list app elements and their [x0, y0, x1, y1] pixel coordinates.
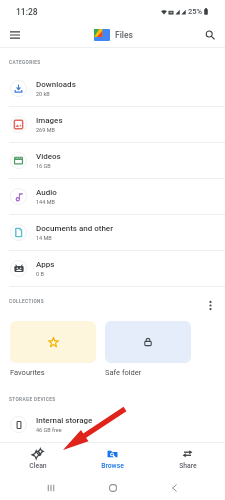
button[interactable]: Audio — [0, 179, 225, 214]
staticText: 46 GB free — [36, 427, 62, 433]
staticText: 0 B — [36, 271, 44, 277]
staticText: 25% — [188, 7, 203, 16]
staticText: Internal storage — [36, 416, 93, 425]
staticText: Clean — [29, 462, 47, 470]
staticText: Documents and other — [36, 224, 113, 233]
button[interactable]: Browse — [75, 448, 150, 470]
staticText: Files — [115, 30, 133, 40]
staticText: Share — [179, 462, 197, 470]
button[interactable]: Back — [163, 477, 185, 499]
staticText: 269 MB — [36, 127, 55, 133]
button[interactable]: Home — [102, 477, 124, 499]
button[interactable]: Internal storage — [0, 410, 225, 438]
staticText: COLLECTIONS — [9, 299, 44, 305]
staticText: 11:28 — [16, 7, 38, 17]
button[interactable]: Favourites — [10, 321, 96, 377]
staticText: Browse — [101, 462, 124, 470]
staticText: Videos — [36, 152, 61, 161]
button[interactable]: More options — [202, 297, 218, 313]
button[interactable]: Share — [150, 448, 225, 470]
button[interactable]: Safe folder — [105, 321, 191, 377]
button[interactable]: Open navigation menu — [4, 24, 26, 46]
button[interactable]: Videos — [0, 143, 225, 178]
button[interactable]: Search — [199, 24, 221, 46]
button[interactable]: Recent apps — [40, 477, 62, 499]
staticText: 16 GB — [36, 163, 51, 169]
button[interactable]: Images — [0, 107, 225, 142]
staticText: Favourites — [10, 368, 45, 377]
staticText: Images — [36, 116, 63, 125]
button[interactable]: Downloads — [0, 71, 225, 106]
staticText: Audio — [36, 188, 57, 197]
button[interactable]: Documents and other — [0, 215, 225, 250]
staticText: 20 kB — [36, 91, 50, 97]
button[interactable]: Apps — [0, 251, 225, 286]
staticText: Safe folder — [105, 368, 142, 377]
staticText: 144 MB — [36, 199, 55, 205]
staticText: Downloads — [36, 80, 76, 89]
button[interactable]: Clean — [0, 448, 75, 470]
staticText: Apps — [36, 260, 55, 269]
staticText: 14 MB — [36, 235, 52, 241]
staticText: STORAGE DEVICES — [9, 397, 56, 403]
staticText: CATEGORIES — [9, 60, 41, 66]
